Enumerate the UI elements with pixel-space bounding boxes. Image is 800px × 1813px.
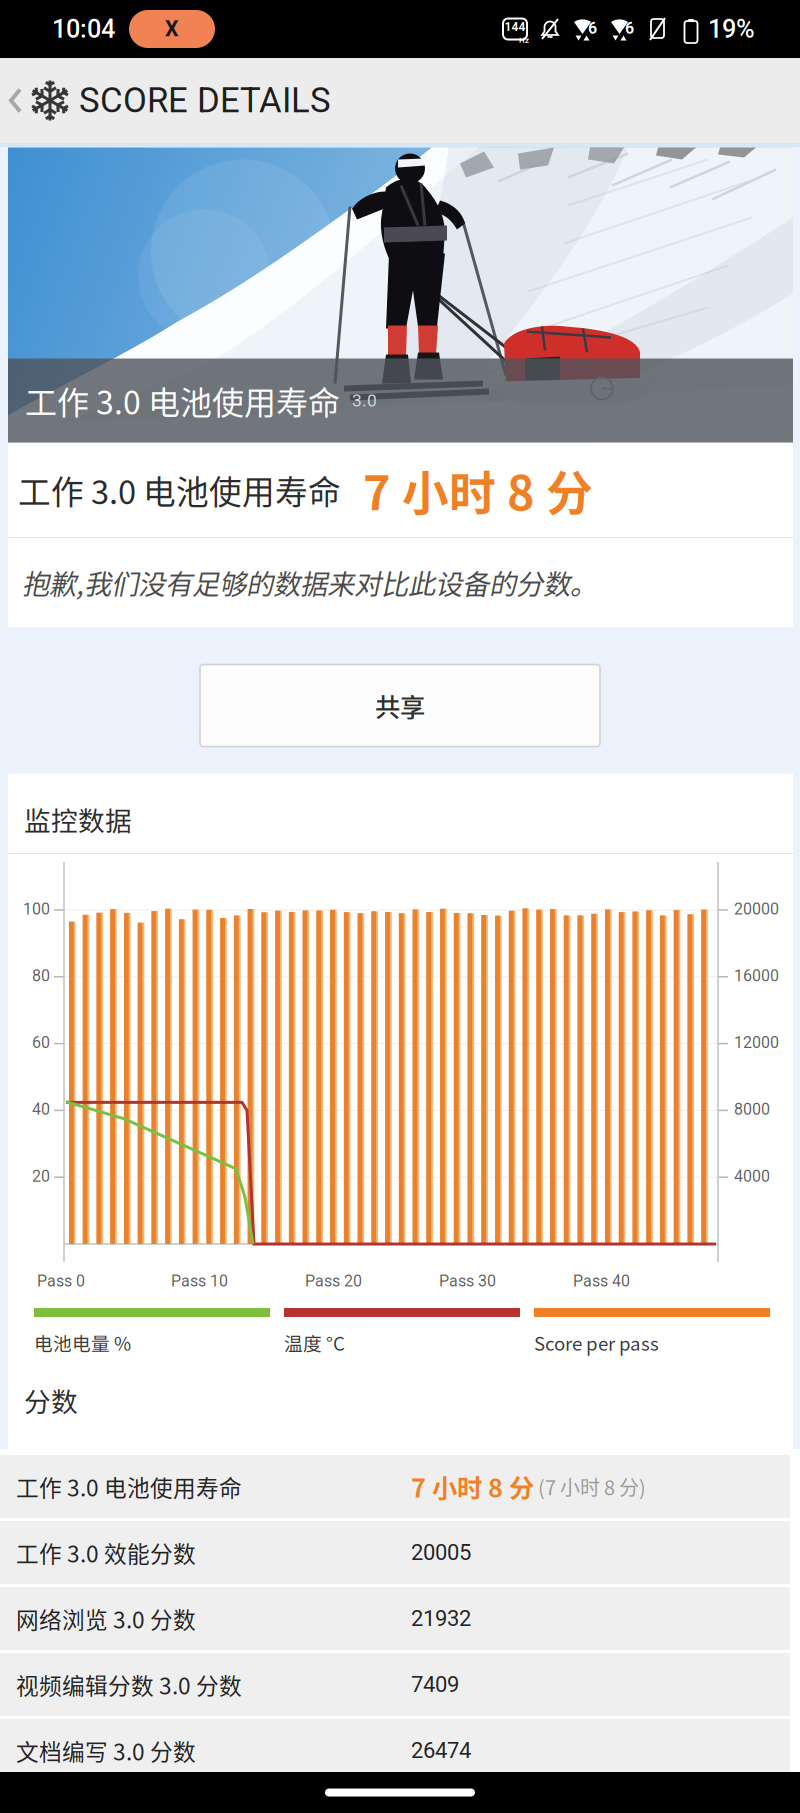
staticText: 3.0 [352, 390, 377, 411]
staticText: 工作 3.0 电池使用寿命 [18, 466, 341, 514]
staticText: 40 [32, 1100, 50, 1119]
staticText: Pass 0 [37, 1272, 85, 1290]
staticText: 6 [625, 19, 634, 38]
staticText: 80 [32, 966, 50, 985]
staticText: 6 [588, 19, 597, 38]
staticText: 20000 [734, 900, 779, 918]
staticText: 16000 [734, 966, 779, 985]
staticText: 21932 [411, 1606, 471, 1631]
staticText: (7 小时 8 分) [538, 1472, 646, 1501]
staticText: 网络浏览 3.0 分数 [16, 1602, 196, 1635]
staticText: 分数 [24, 1381, 78, 1419]
staticText: 视频编辑分数 3.0 分数 [16, 1668, 242, 1701]
staticText: 20 [32, 1167, 50, 1186]
staticText: 文档编写 3.0 分数 [16, 1734, 196, 1767]
staticText: Pass 10 [171, 1272, 228, 1290]
staticText: 工作 3.0 效能分数 [16, 1536, 196, 1569]
staticText: 19% [708, 14, 755, 44]
staticText: 4000 [734, 1167, 770, 1186]
button[interactable]: 共享 [200, 664, 600, 746]
staticText: X [165, 16, 179, 41]
staticText: 10:04 [52, 14, 115, 44]
staticText: 100 [23, 900, 50, 918]
staticText: Pass 20 [305, 1272, 362, 1290]
staticText: 7409 [411, 1672, 459, 1697]
staticText: Score per pass [534, 1329, 659, 1356]
staticText: 工作 3.0 电池使用寿命 [16, 1470, 242, 1503]
staticText: 7 小时 8 分 [363, 456, 593, 524]
staticText: Hz [519, 35, 529, 45]
staticText: 电池电量 % [34, 1329, 131, 1356]
staticText: 26474 [411, 1738, 471, 1763]
staticText: Pass 40 [573, 1272, 630, 1290]
staticText: 8000 [734, 1100, 770, 1119]
staticText: 20005 [411, 1540, 471, 1565]
staticText: 工作 3.0 电池使用寿命 [25, 377, 340, 424]
staticText: SCORE DETAILS [79, 80, 331, 121]
staticText: 监控数据 [24, 800, 132, 838]
staticText: 60 [32, 1033, 50, 1052]
staticText: 抱歉,我们没有足够的数据来对比此设备的分数。 [22, 563, 597, 602]
staticText: 温度 °C [284, 1329, 345, 1356]
staticText: 144 [504, 20, 525, 34]
staticText: 12000 [734, 1033, 779, 1052]
staticText: Pass 30 [439, 1272, 496, 1290]
staticText: 共享 [375, 687, 425, 724]
staticText: 7 小时 8 分 [411, 1468, 534, 1505]
button[interactable]: Back [0, 58, 71, 143]
